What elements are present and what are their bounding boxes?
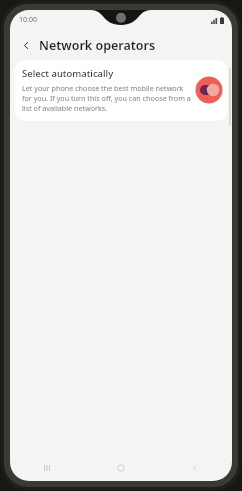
button[interactable]: Back [158,455,232,481]
button[interactable]: Navigate up [16,35,36,55]
button[interactable]: Select automatically [14,60,228,121]
button[interactable]: Select automatically toggle, on [194,75,224,105]
staticText: Let your phone choose the best mobile ne… [22,83,192,113]
staticText: Select automatically [22,67,114,80]
button[interactable]: Recent apps [10,455,84,481]
staticText: Network operators [39,37,156,54]
staticText: 10:00 [19,15,37,25]
